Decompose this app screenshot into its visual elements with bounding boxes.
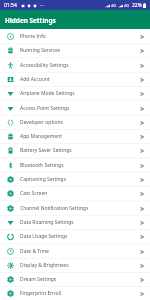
staticText: 4G	[111, 3, 117, 8]
button[interactable]: Data Usage Settings	[0, 229, 150, 243]
staticText: Phone Info	[20, 33, 140, 40]
staticText: Data Usage Settings	[20, 233, 140, 240]
staticText: Cast Screen	[20, 190, 140, 197]
staticText: 01:54	[4, 2, 17, 9]
button[interactable]: Phone Info	[0, 29, 150, 43]
staticText: Dream Settings	[20, 276, 140, 283]
staticText: Bluetooth Settings	[20, 162, 140, 169]
staticText: Display & Brightness	[20, 262, 140, 269]
staticText: Data Roaming Settings	[20, 219, 140, 226]
staticText: ···	[40, 2, 45, 9]
staticText: Accessibility Settings	[20, 62, 140, 69]
staticText: App Management	[20, 133, 140, 140]
staticText: Running Services	[20, 47, 140, 54]
button[interactable]: Developer options	[0, 115, 150, 129]
staticText: Airplane Mode Settings	[20, 90, 140, 97]
staticText: Access Point Settings	[20, 105, 140, 112]
staticText: Date & Time	[20, 248, 140, 255]
button[interactable]: Access Point Settings	[0, 101, 150, 115]
button[interactable]: Battery Saver Settings	[0, 143, 150, 157]
button[interactable]: Accessibility Settings	[0, 58, 150, 72]
button[interactable]: Bluetooth Settings	[0, 158, 150, 172]
staticText: Fingerprint Enroll	[20, 290, 140, 297]
button[interactable]: Cast Screen	[0, 186, 150, 200]
button[interactable]: Captioning Settings	[0, 172, 150, 186]
staticText: Add Account	[20, 76, 140, 83]
staticText: Developer options	[20, 119, 140, 126]
button[interactable]: Channel Notification Settings	[0, 201, 150, 215]
button[interactable]: Dream Settings	[0, 272, 150, 286]
staticText: Hidden Settings	[5, 16, 56, 25]
staticText: 4G	[124, 3, 130, 8]
staticText: Captioning Settings	[20, 176, 140, 183]
button[interactable]: Fingerprint Enroll	[0, 286, 150, 300]
button[interactable]: App Management	[0, 129, 150, 143]
button[interactable]: Display & Brightness	[0, 258, 150, 272]
staticText: 22%	[132, 2, 142, 9]
staticText: Battery Saver Settings	[20, 147, 140, 154]
button[interactable]: Airplane Mode Settings	[0, 86, 150, 100]
button[interactable]: Running Services	[0, 43, 150, 57]
staticText: Channel Notification Settings	[20, 205, 140, 212]
button[interactable]: Date & Time	[0, 244, 150, 258]
button[interactable]: Add Account	[0, 72, 150, 86]
button[interactable]: Data Roaming Settings	[0, 215, 150, 229]
